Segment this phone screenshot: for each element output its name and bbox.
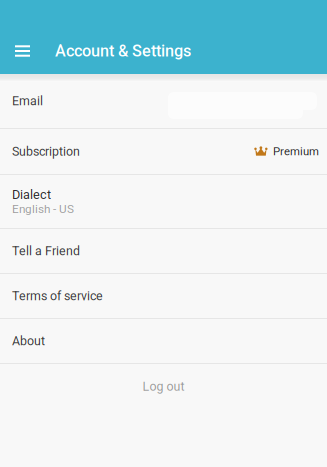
- staticText: Tell a Friend: [12, 244, 80, 258]
- staticText: English - US: [12, 202, 74, 216]
- button[interactable]: Terms of service: [0, 274, 327, 318]
- staticText: About: [12, 334, 45, 348]
- staticText: Log out: [142, 379, 184, 394]
- staticText: Dialect: [12, 187, 51, 202]
- staticText: Premium: [273, 145, 319, 158]
- button[interactable]: About: [0, 319, 327, 363]
- staticText: Terms of service: [12, 289, 103, 303]
- button[interactable]: Email: [0, 74, 327, 128]
- staticText: Email: [12, 94, 43, 108]
- staticText: Account & Settings: [55, 41, 191, 61]
- button[interactable]: Menu: [0, 34, 40, 68]
- button[interactable]: Log out: [0, 364, 327, 409]
- button[interactable]: Dialect: [0, 175, 327, 228]
- button[interactable]: Subscription: [0, 129, 327, 174]
- staticText: Subscription: [12, 144, 80, 159]
- button[interactable]: Tell a Friend: [0, 229, 327, 273]
